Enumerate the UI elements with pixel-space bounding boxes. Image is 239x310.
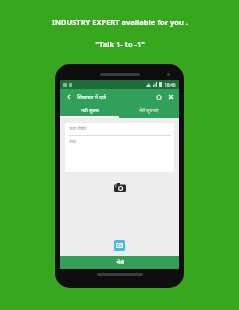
staticText: 18:46	[164, 82, 176, 88]
staticText: मेरी सूचनाएं	[139, 107, 159, 113]
button[interactable]: Back	[63, 91, 74, 102]
staticText: नयी सूचना	[81, 107, 99, 113]
staticText: शब्द	[69, 139, 76, 145]
staticText: INDUSTRY EXPERT available for you .	[52, 17, 188, 27]
staticText: भेजें	[116, 259, 124, 266]
button[interactable]: शब्द शीर्षक	[65, 123, 174, 135]
staticText: शब्द शीर्षक	[69, 126, 87, 132]
button[interactable]: नयी सूचना	[60, 104, 119, 116]
button[interactable]: Take photo	[112, 179, 128, 195]
staticText: शिकायत में दर्ज	[77, 93, 106, 100]
staticText: "Talk 1- to -1"	[95, 39, 145, 49]
button[interactable]: Keyboard	[114, 240, 125, 251]
button[interactable]: भेजें	[60, 256, 179, 269]
button[interactable]: शब्द	[65, 136, 174, 172]
button[interactable]: Home	[153, 91, 164, 102]
button[interactable]: मेरी सूचनाएं	[119, 104, 179, 116]
button[interactable]: Close	[165, 91, 176, 102]
